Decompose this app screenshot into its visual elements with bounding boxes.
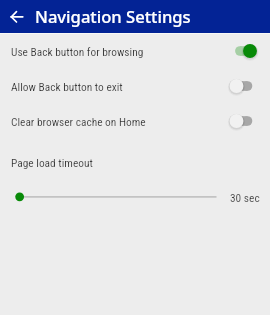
staticText: Navigation Settings [35, 5, 191, 28]
button[interactable]: Page load timeout [0, 148, 270, 208]
staticText: Page load timeout [11, 156, 93, 169]
staticText: Clear browser cache on Home [11, 115, 146, 128]
button[interactable]: Use Back button for browsing [0, 37, 270, 65]
button[interactable]: Allow Back button to exit [0, 72, 270, 100]
button[interactable]: Clear browser cache on Home [0, 107, 270, 135]
other: Page load timeout slider [0, 186, 270, 208]
staticText: 30 sec [230, 191, 260, 204]
button[interactable]: Back [5, 5, 29, 29]
staticText: Allow Back button to exit [11, 80, 123, 93]
staticText: Use Back button for browsing [11, 45, 144, 58]
